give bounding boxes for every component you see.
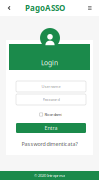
button[interactable]: Back: [1, 0, 17, 16]
staticText: Username: [41, 84, 60, 89]
button[interactable]: Username: [16, 81, 86, 92]
staticText: Password: [42, 97, 59, 102]
staticText: Password dimenticata?: [21, 140, 77, 148]
staticText: © 2020 Intrapresa: [34, 173, 65, 178]
button[interactable]: Menu: [82, 0, 98, 16]
button[interactable]: Password dimenticata?: [6, 141, 93, 147]
button[interactable]: Ricordami: [16, 111, 86, 117]
staticText: PagoASSO: [25, 3, 65, 13]
button[interactable]: Entra: [16, 123, 86, 133]
staticText: Login: [41, 58, 58, 67]
staticText: Ricordami: [44, 112, 62, 117]
button[interactable]: Password: [16, 94, 86, 105]
staticText: Entra: [44, 124, 57, 132]
